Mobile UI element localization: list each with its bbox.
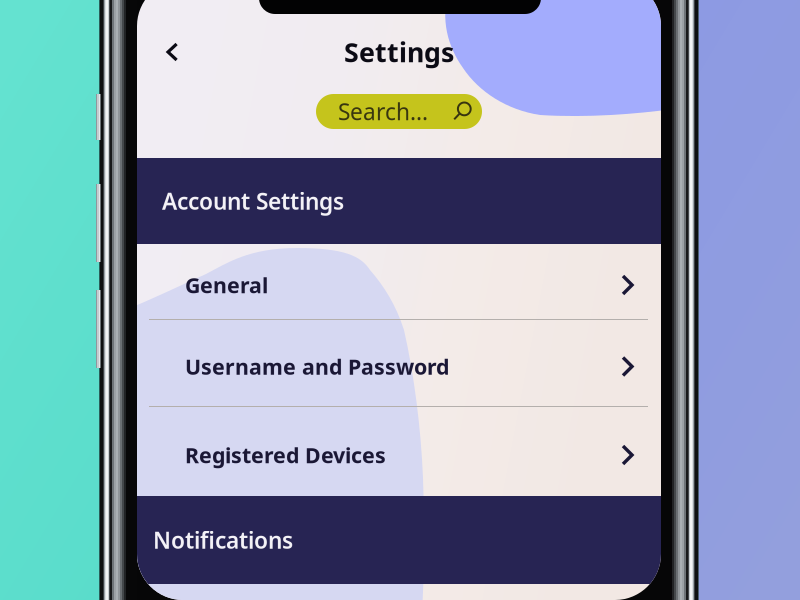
staticText: Registered Devices [185, 441, 386, 469]
staticText: Settings [344, 34, 454, 70]
staticText: Search... [338, 96, 428, 126]
button[interactable]: Registered Devices [137, 407, 661, 496]
button[interactable]: General [137, 244, 661, 319]
staticText: Account Settings [162, 186, 344, 216]
button[interactable]: Username and Password [137, 320, 661, 406]
button[interactable]: Search... [316, 94, 482, 129]
staticText: Notifications [153, 525, 293, 555]
staticText: Username and Password [185, 352, 449, 381]
button[interactable]: Back [149, 29, 195, 75]
staticText: General [185, 271, 268, 299]
